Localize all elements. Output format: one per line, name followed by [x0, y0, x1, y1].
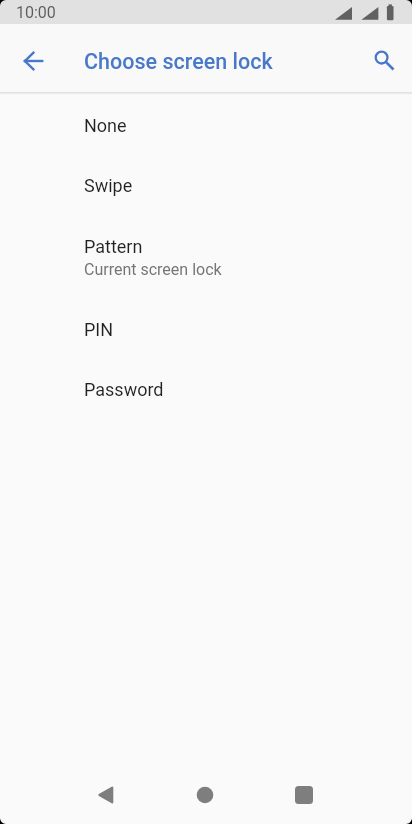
- staticText: Swipe: [84, 175, 133, 196]
- button[interactable]: Pattern: [0, 215, 412, 299]
- staticText: Choose screen lock: [84, 49, 273, 74]
- button[interactable]: PIN: [0, 299, 412, 359]
- button[interactable]: [362, 39, 406, 83]
- staticText: PIN: [84, 319, 114, 340]
- staticText: None: [84, 115, 127, 136]
- button[interactable]: Swipe: [0, 155, 412, 215]
- staticText: 10:00: [16, 3, 56, 22]
- button[interactable]: [82, 771, 130, 819]
- staticText: Pattern: [84, 236, 143, 257]
- staticText: Current screen lock: [84, 260, 222, 279]
- button[interactable]: [181, 771, 229, 819]
- button[interactable]: [280, 771, 328, 819]
- staticText: Password: [84, 379, 164, 400]
- button[interactable]: Password: [0, 359, 412, 419]
- button[interactable]: None: [0, 95, 412, 155]
- button[interactable]: [12, 39, 56, 83]
